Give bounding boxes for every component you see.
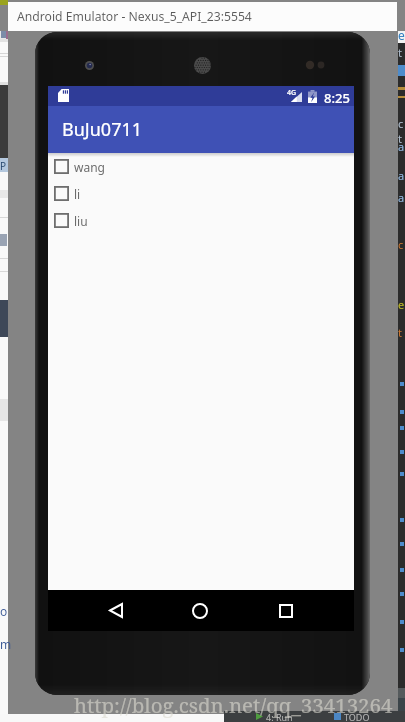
button[interactable]: Home — [172, 596, 228, 625]
staticText: Android Emulator - Nexus_5_API_23:5554 — [17, 8, 252, 25]
button[interactable]: li — [48, 180, 354, 207]
staticText: e — [398, 27, 405, 43]
staticText: t — [398, 325, 402, 340]
staticText: liu — [74, 213, 88, 229]
staticText: Pre — [0, 159, 8, 173]
staticText: li — [74, 186, 81, 202]
staticText: wang — [74, 159, 105, 175]
staticText: a — [398, 168, 405, 183]
staticText: m — [0, 636, 8, 652]
staticText: ct — [398, 116, 405, 146]
staticText: e — [398, 297, 405, 312]
staticText: c — [398, 237, 404, 252]
staticText: BuJu0711 — [62, 117, 143, 142]
staticText: TODO — [344, 711, 370, 722]
button[interactable]: Recent apps — [258, 596, 314, 625]
button[interactable]: liu — [48, 207, 354, 234]
staticText: 4G — [287, 88, 297, 98]
button[interactable]: wang — [48, 153, 354, 180]
button[interactable]: Back — [88, 596, 144, 625]
staticText: http://blog.csdn.net/qq_33413264 — [74, 691, 393, 719]
staticText: o — [0, 603, 8, 619]
staticText: 4: Run — [266, 711, 293, 722]
staticText: a — [398, 190, 405, 205]
staticText: te — [398, 45, 405, 75]
staticText: 8:25 — [324, 89, 350, 107]
staticText: a — [398, 139, 405, 154]
